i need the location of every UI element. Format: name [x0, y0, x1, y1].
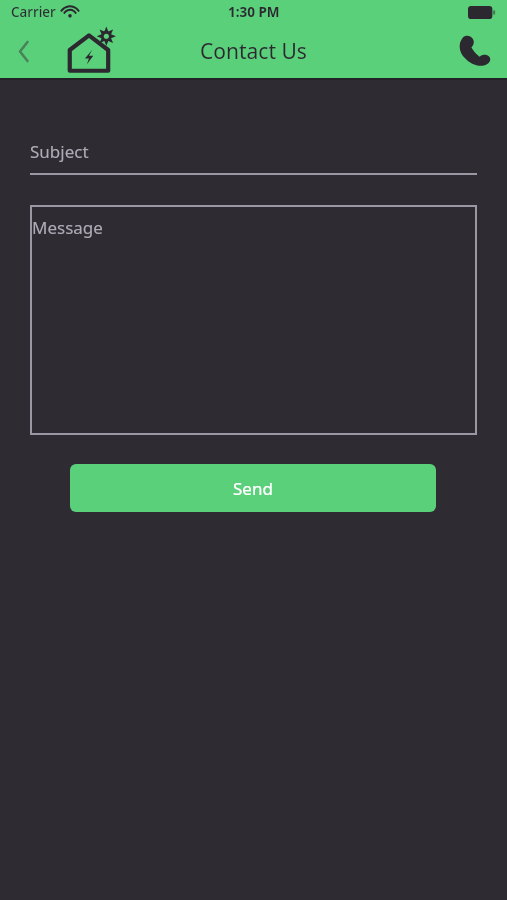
staticText: Carrier: [11, 3, 56, 21]
button[interactable]: Call: [443, 24, 507, 78]
staticText: Contact Us: [200, 37, 307, 66]
button[interactable]: Back: [0, 24, 48, 78]
staticText: 1:30 PM: [228, 3, 280, 21]
staticText: Subject: [30, 140, 89, 163]
button[interactable]: Subject: [30, 140, 477, 175]
button[interactable]: Home: [60, 24, 126, 78]
button[interactable]: Message: [30, 205, 477, 435]
staticText: Send: [233, 477, 273, 500]
button[interactable]: Send: [70, 464, 436, 512]
staticText: Message: [32, 216, 103, 239]
